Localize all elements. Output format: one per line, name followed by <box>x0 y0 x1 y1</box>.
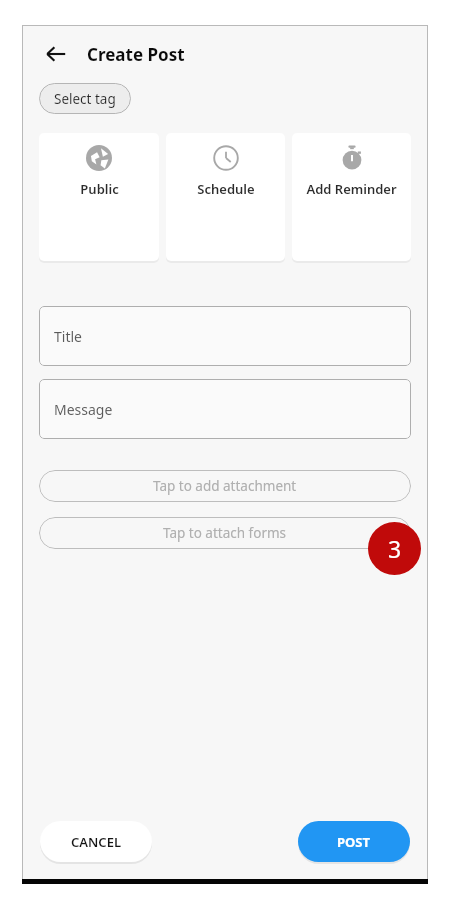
button[interactable]: Tap to attach forms <box>39 517 411 549</box>
staticText: Schedule <box>197 180 255 198</box>
button[interactable]: Add Reminder <box>292 133 411 261</box>
staticText: CANCEL <box>71 833 121 851</box>
button[interactable]: CANCEL <box>40 821 152 862</box>
staticText: Tap to attach forms <box>163 524 287 542</box>
button[interactable]: 3 forms attached <box>368 522 421 575</box>
button[interactable]: Schedule <box>166 133 285 261</box>
staticText: Title <box>54 327 82 346</box>
staticText: Tap to add attachment <box>153 477 297 495</box>
button[interactable]: Back <box>39 37 73 71</box>
staticText: Create Post <box>87 43 185 66</box>
button[interactable]: POST <box>298 821 410 862</box>
staticText: Public <box>80 180 119 198</box>
button[interactable]: Message <box>39 379 411 439</box>
button[interactable]: Tap to add attachment <box>39 470 411 502</box>
staticText: Add Reminder <box>306 180 397 198</box>
staticText: Select tag <box>54 90 116 108</box>
staticText: POST <box>337 833 371 851</box>
button[interactable]: Select tag <box>39 83 131 114</box>
staticText: 3 <box>388 533 402 564</box>
button[interactable]: Title <box>39 306 411 366</box>
button[interactable]: Public <box>39 133 159 261</box>
staticText: Message <box>54 400 113 419</box>
